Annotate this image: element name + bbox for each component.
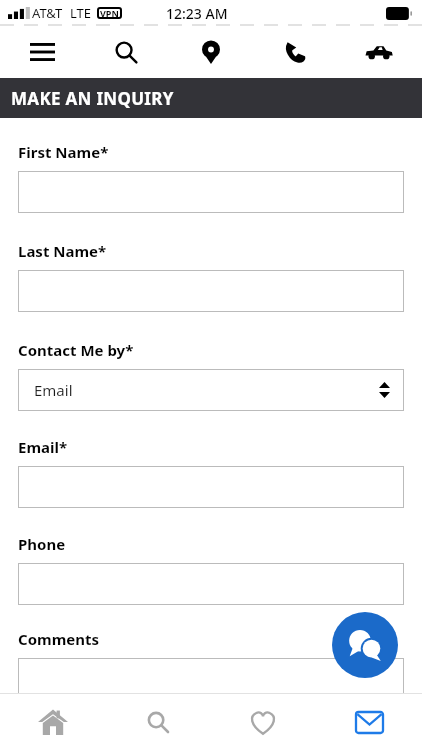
button[interactable] bbox=[18, 658, 404, 728]
button[interactable]: Call bbox=[269, 26, 321, 78]
button[interactable] bbox=[18, 171, 404, 213]
button[interactable]: Open chat bbox=[332, 612, 398, 678]
button[interactable] bbox=[18, 270, 404, 312]
staticText: Comments bbox=[18, 629, 100, 649]
staticText: Phone bbox=[18, 534, 66, 554]
button[interactable] bbox=[18, 563, 404, 605]
button[interactable]: Vehicles bbox=[353, 26, 405, 78]
staticText: Contact Me by* bbox=[18, 340, 134, 360]
button[interactable] bbox=[18, 466, 404, 508]
staticText: Email* bbox=[18, 437, 68, 457]
staticText: LTE bbox=[70, 4, 92, 22]
button[interactable]: Search bbox=[100, 26, 152, 78]
button[interactable]: Locations bbox=[185, 26, 237, 78]
button[interactable]: Menu bbox=[16, 26, 68, 78]
button[interactable]: Email bbox=[18, 369, 404, 411]
staticText: Email bbox=[34, 380, 73, 400]
button[interactable]: Search bbox=[105, 694, 210, 750]
button[interactable]: Favorites bbox=[210, 694, 316, 750]
staticText: AT&T bbox=[32, 4, 63, 22]
staticText: First Name* bbox=[18, 142, 109, 162]
staticText: VPN bbox=[100, 7, 119, 19]
staticText: 12:23 AM bbox=[166, 4, 228, 23]
button[interactable]: Home bbox=[0, 694, 105, 750]
button[interactable]: Inbox bbox=[316, 694, 422, 750]
staticText: Last Name* bbox=[18, 241, 107, 261]
staticText: MAKE AN INQUIRY bbox=[11, 87, 174, 110]
